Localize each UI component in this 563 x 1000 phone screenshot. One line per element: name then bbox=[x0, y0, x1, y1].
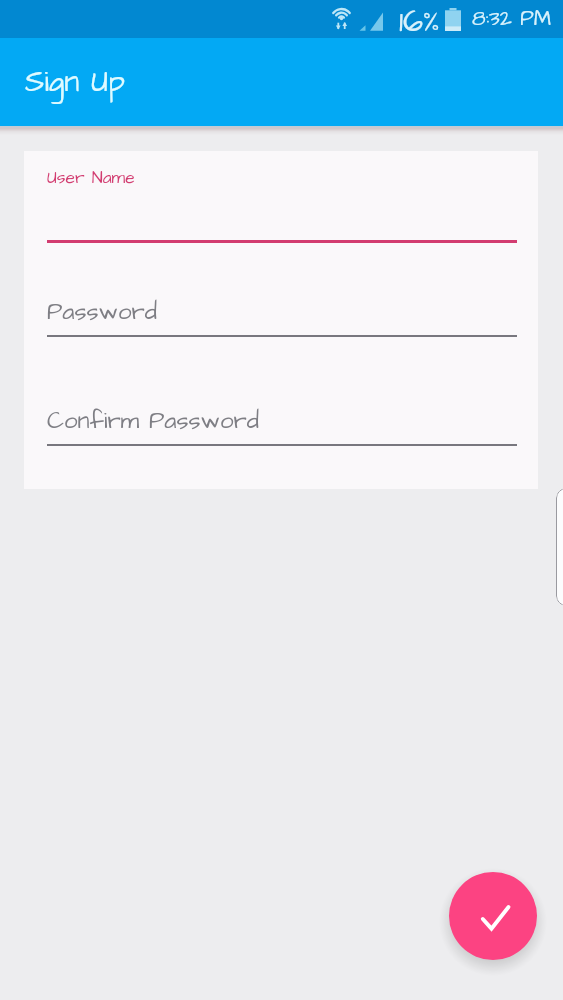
staticText: Confirm Password bbox=[47, 404, 259, 437]
staticText: Sign Up bbox=[25, 61, 125, 103]
staticText: User Name bbox=[47, 166, 135, 190]
staticText: 8:32 PM bbox=[472, 4, 551, 33]
button[interactable]: Confirm Password bbox=[47, 399, 517, 446]
staticText: 16% bbox=[399, 0, 440, 37]
button[interactable]: Confirm sign up bbox=[449, 872, 537, 960]
button[interactable]: User Name bbox=[47, 161, 517, 243]
button[interactable]: Password bbox=[47, 290, 517, 337]
staticText: Password bbox=[47, 295, 158, 328]
